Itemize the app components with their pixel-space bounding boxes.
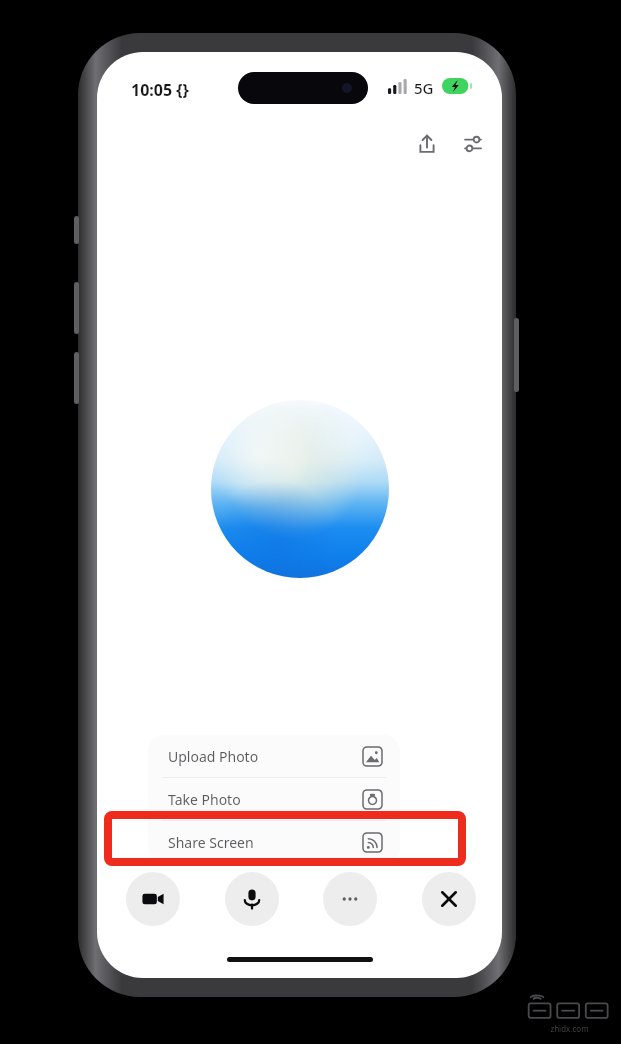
- staticText: zhidx.com: [550, 1023, 589, 1034]
- staticText: Take Photo: [168, 790, 241, 809]
- button[interactable]: Settings: [451, 122, 495, 166]
- button[interactable]: Share Screen: [148, 821, 400, 863]
- button[interactable]: Share: [405, 122, 449, 166]
- button[interactable]: Take Photo: [148, 778, 400, 820]
- staticText: 5G: [414, 78, 434, 98]
- staticText: Share Screen: [168, 833, 254, 852]
- button[interactable]: Upload Photo: [148, 735, 400, 777]
- button[interactable]: Microphone: [225, 872, 279, 926]
- button[interactable]: More options: [323, 872, 377, 926]
- button[interactable]: Close: [422, 872, 476, 926]
- button[interactable]: Camera: [126, 872, 180, 926]
- staticText: Upload Photo: [168, 747, 259, 766]
- staticText: 10:05 {}: [131, 79, 189, 101]
